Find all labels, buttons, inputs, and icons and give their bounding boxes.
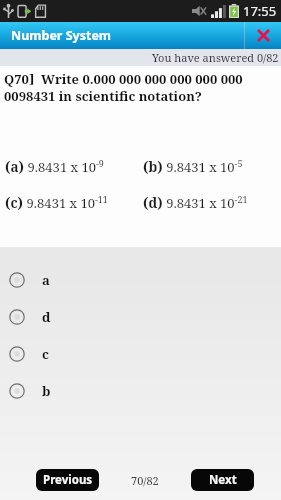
staticText: d	[42, 308, 51, 326]
staticText: b	[42, 382, 51, 400]
button[interactable]: a	[0, 261, 281, 298]
button[interactable]: c	[0, 335, 281, 372]
staticText: Next	[209, 472, 237, 488]
button[interactable]: Close	[245, 22, 281, 49]
button[interactable]: b	[0, 372, 281, 409]
staticText: a	[42, 271, 50, 289]
staticText: Previous	[43, 472, 93, 488]
button[interactable]: Previous	[36, 469, 99, 491]
staticText: (a) 9.8431 x 10-9	[5, 157, 104, 176]
staticText: 70/82	[131, 473, 159, 488]
button[interactable]: d	[0, 298, 281, 335]
staticText: (d) 9.8431 x 10-21	[143, 193, 248, 212]
staticText: 17:55	[243, 2, 277, 20]
staticText: Q70] Write 0.000 000 000 000 000 000 009…	[4, 70, 243, 105]
staticText: You have answered 0/82	[152, 50, 279, 65]
staticText: (c) 9.8431 x 10-11	[5, 193, 108, 212]
button[interactable]: Next	[191, 469, 254, 491]
staticText: (b) 9.8431 x 10-5	[143, 157, 243, 176]
staticText: Number System	[11, 27, 112, 44]
staticText: c	[42, 345, 49, 363]
